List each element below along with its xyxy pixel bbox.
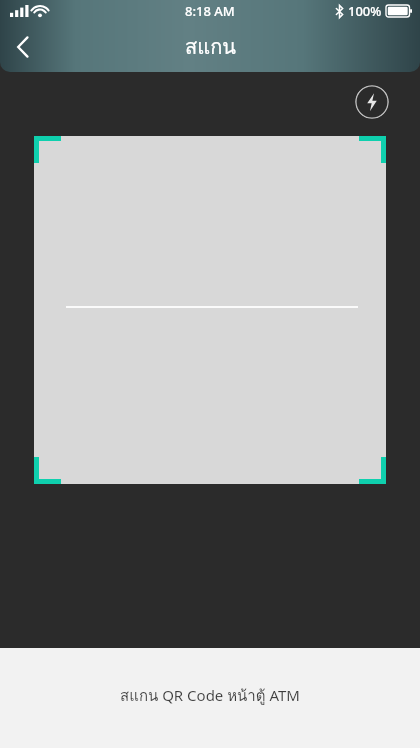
staticText: สแกน: [185, 31, 236, 63]
staticText: 8:18 AM: [185, 2, 235, 20]
button[interactable]: Back: [0, 24, 46, 70]
button[interactable]: Toggle flash: [355, 85, 389, 119]
staticText: สแกน QR Code หน้าตู้ ATM: [120, 684, 300, 708]
staticText: 100%: [348, 2, 382, 20]
